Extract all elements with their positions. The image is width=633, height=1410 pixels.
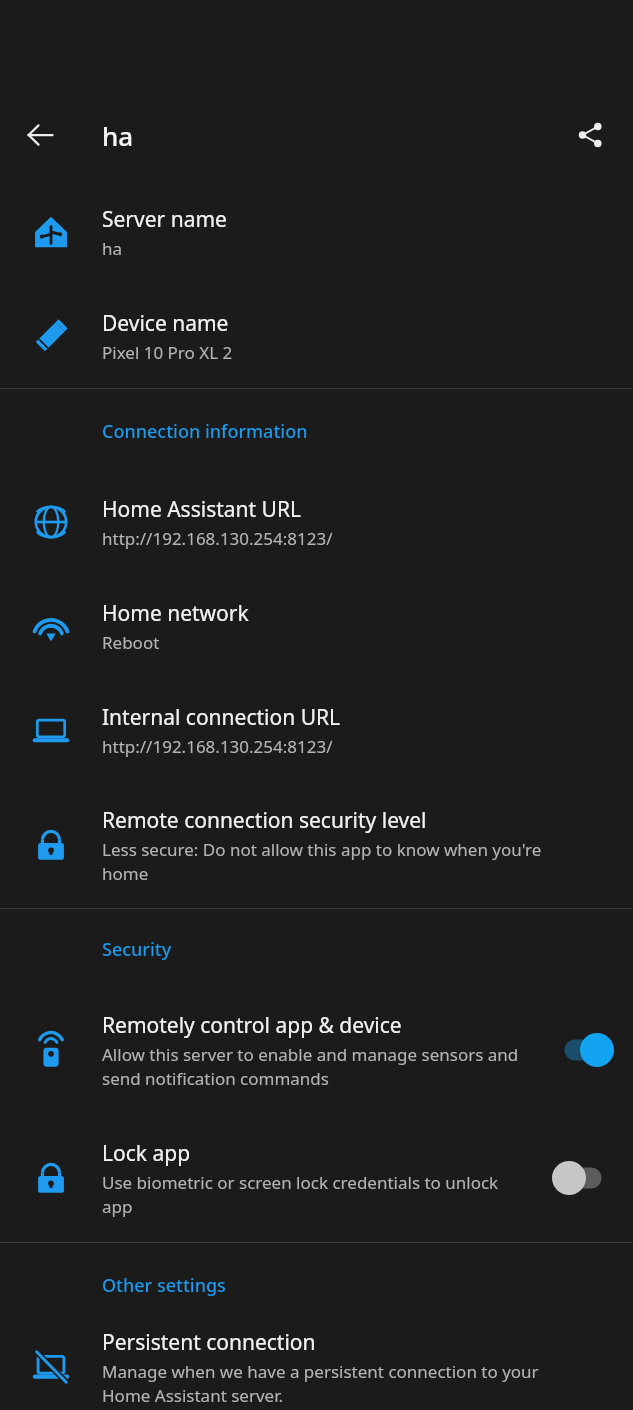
button[interactable]: Server name: [0, 180, 633, 284]
staticText: Remote connection security level: [102, 806, 427, 835]
staticText: Less secure: Do not allow this app to kn…: [102, 838, 587, 885]
staticText: Use biometric or screen lock credentials…: [102, 1171, 523, 1218]
button[interactable]: Toggle on: [533, 986, 633, 1114]
staticText: Home Assistant URL: [102, 495, 302, 524]
staticText: Allow this server to enable and manage s…: [102, 1043, 523, 1090]
staticText: Security: [102, 937, 172, 962]
button[interactable]: Share: [547, 90, 633, 180]
staticText: Internal connection URL: [102, 703, 341, 732]
staticText: ha: [102, 237, 123, 260]
staticText: Connection information: [102, 419, 308, 444]
staticText: Persistent connection: [102, 1328, 316, 1357]
button[interactable]: Back: [0, 90, 80, 180]
staticText: Lock app: [102, 1139, 191, 1168]
button[interactable]: Remotely control app & device: [0, 986, 633, 1114]
staticText: Other settings: [102, 1273, 226, 1298]
button[interactable]: Home Assistant URL: [0, 470, 633, 574]
button[interactable]: Remote connection security level: [0, 782, 633, 908]
staticText: http://192.168.130.254:8123/: [102, 735, 333, 758]
staticText: Device name: [102, 309, 229, 338]
staticText: Remotely control app & device: [102, 1011, 402, 1040]
staticText: Reboot: [102, 631, 160, 654]
staticText: Pixel 10 Pro XL 2: [102, 341, 233, 364]
staticText: ha: [102, 118, 134, 153]
button[interactable]: Device name: [0, 284, 633, 388]
button[interactable]: Home network: [0, 574, 633, 678]
staticText: Manage when we have a persistent connect…: [102, 1360, 587, 1407]
staticText: http://192.168.130.254:8123/: [102, 527, 333, 550]
button[interactable]: Lock app: [0, 1114, 633, 1242]
staticText: Home network: [102, 599, 249, 628]
button[interactable]: Toggle off: [533, 1114, 633, 1242]
button[interactable]: Internal connection URL: [0, 678, 633, 782]
button[interactable]: Persistent connection: [0, 1324, 633, 1410]
staticText: Server name: [102, 205, 227, 234]
